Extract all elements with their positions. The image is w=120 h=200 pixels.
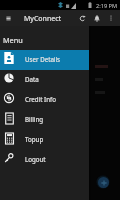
- button[interactable]: Billing: [0, 110, 89, 130]
- staticText: Logout: [25, 155, 46, 163]
- staticText: User Details: [25, 55, 61, 63]
- button[interactable]: Add: [98, 177, 109, 188]
- button[interactable]: Notifications: [90, 10, 104, 26]
- staticText: Menu: [3, 35, 23, 45]
- button[interactable]: Credit Info: [0, 90, 89, 110]
- staticText: Data: [25, 75, 39, 83]
- staticText: Topup: [25, 135, 44, 143]
- button[interactable]: Data: [0, 70, 89, 90]
- button[interactable]: Open navigation drawer: [0, 10, 16, 26]
- staticText: Billing: [25, 115, 44, 123]
- button[interactable]: Topup: [0, 130, 89, 150]
- staticText: Credit Info: [25, 95, 56, 103]
- staticText: 2:19 PM: [96, 2, 118, 10]
- button[interactable]: User Details: [0, 50, 89, 70]
- staticText: MyConnect: [24, 14, 62, 24]
- button[interactable]: Refresh: [75, 10, 90, 26]
- button[interactable]: More options: [105, 10, 116, 26]
- button[interactable]: Logout: [0, 150, 89, 170]
